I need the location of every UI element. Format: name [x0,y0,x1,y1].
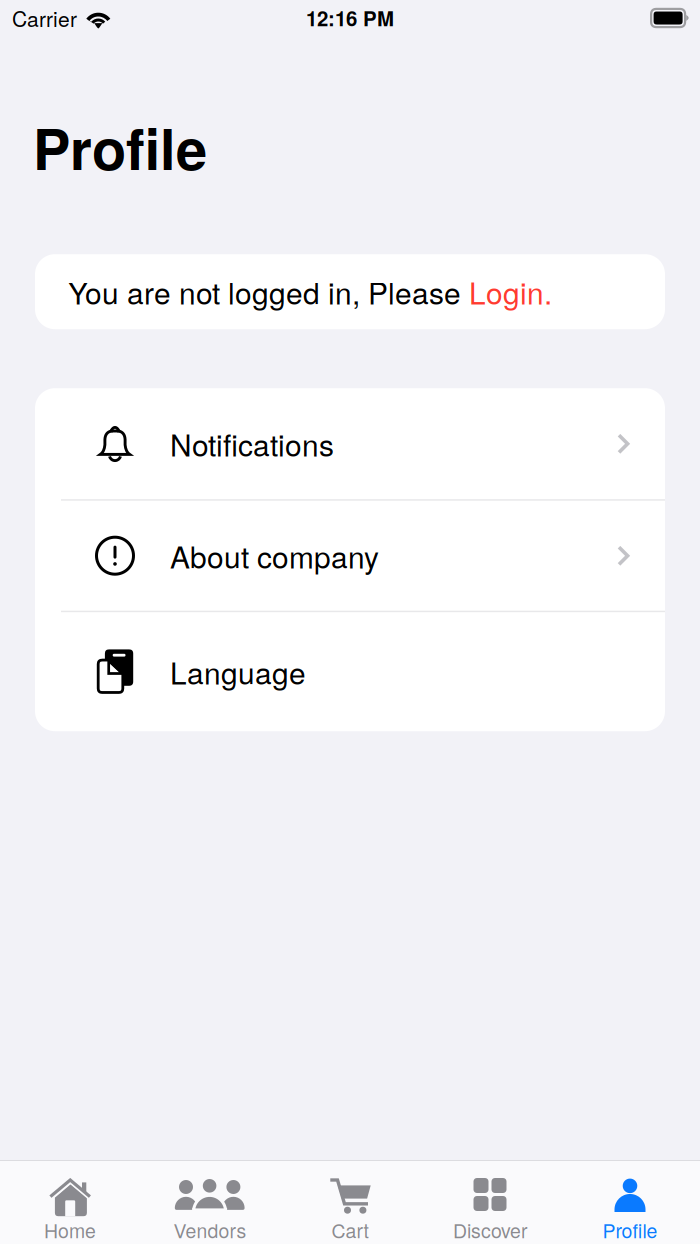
staticText: Cart [331,1216,368,1244]
staticText: Profile [33,107,207,187]
button[interactable]: Language [35,612,665,731]
staticText: Home [44,1216,96,1244]
staticText: Login. [469,270,552,313]
staticText: Notifications [170,422,334,465]
button[interactable]: About company [35,501,665,611]
staticText: Profile [602,1216,657,1244]
button[interactable]: Login. [469,270,552,313]
staticText: 12:16 PM [306,3,394,33]
staticText: Discover [453,1216,527,1244]
staticText: Vendors [173,1216,246,1244]
button[interactable]: Profile [560,1161,700,1244]
button[interactable]: Home [0,1161,140,1244]
staticText: Carrier [12,3,77,33]
staticText: About company [170,534,379,577]
button[interactable]: Notifications [35,388,665,499]
staticText: You are not logged in, Please [68,270,469,313]
button[interactable]: Vendors [140,1161,280,1244]
staticText: Language [170,650,306,693]
button[interactable]: Cart [280,1161,420,1244]
button[interactable]: Discover [420,1161,560,1244]
